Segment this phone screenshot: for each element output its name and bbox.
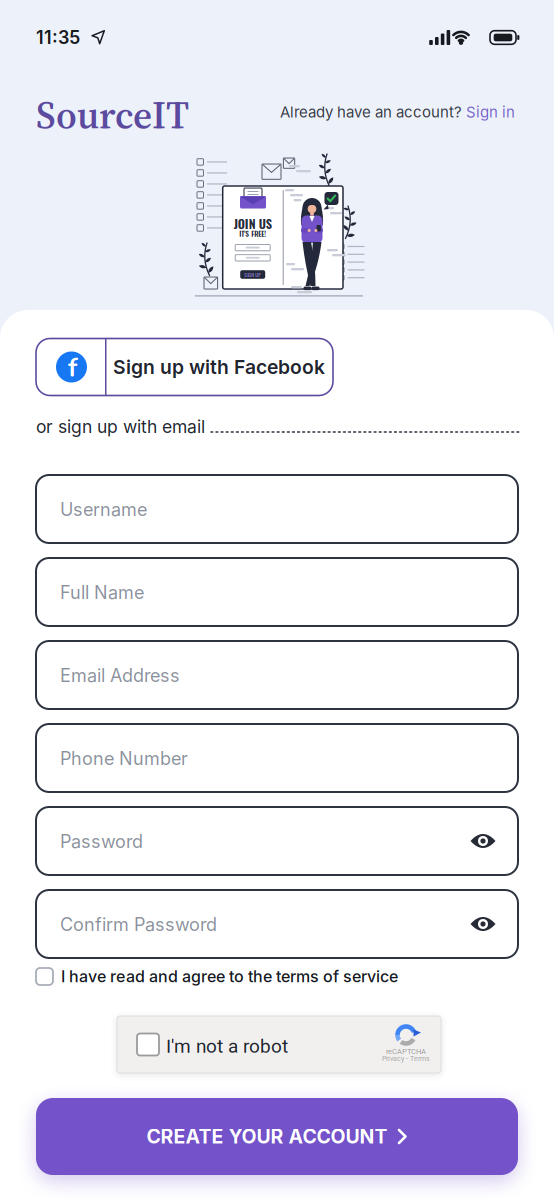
staticText: Email Address — [60, 664, 180, 686]
staticText: or sign up with email — [36, 416, 205, 437]
staticText: SourceIT — [36, 89, 189, 141]
staticText: Full Name — [60, 581, 144, 603]
button[interactable]: Sign in — [466, 103, 515, 121]
staticText: Password — [60, 830, 143, 852]
staticText: JOIN US — [234, 214, 272, 233]
button[interactable]: Show password — [470, 916, 495, 931]
button[interactable]: Show password — [470, 833, 495, 848]
button[interactable]: CREATE YOUR ACCOUNT — [36, 1098, 518, 1175]
button[interactable]: f — [36, 338, 333, 395]
staticText: CREATE YOUR ACCOUNT — [146, 1125, 387, 1148]
staticText: Confirm Password — [60, 913, 217, 935]
staticText: Sign in — [466, 103, 515, 121]
staticText: Username — [60, 498, 147, 520]
staticText: 11:35 — [36, 27, 80, 48]
staticText: I have read and agree to the terms of se… — [61, 967, 398, 986]
button[interactable]: I'm not a robot — [117, 1016, 441, 1073]
staticText: Sign up with Facebook — [113, 355, 325, 379]
staticText: Privacy - Terms — [382, 1054, 430, 1063]
staticText: IT'S FREE! — [239, 228, 266, 239]
staticText: reCAPTCHA — [386, 1047, 426, 1056]
staticText: I'm not a robot — [166, 1035, 288, 1057]
staticText: Phone Number — [60, 747, 188, 769]
staticText: SIGN UP — [244, 271, 261, 278]
staticText: Already have an account? — [280, 103, 462, 121]
staticText: f — [68, 350, 77, 386]
button[interactable]: I have read and agree to the terms of se… — [36, 967, 518, 986]
